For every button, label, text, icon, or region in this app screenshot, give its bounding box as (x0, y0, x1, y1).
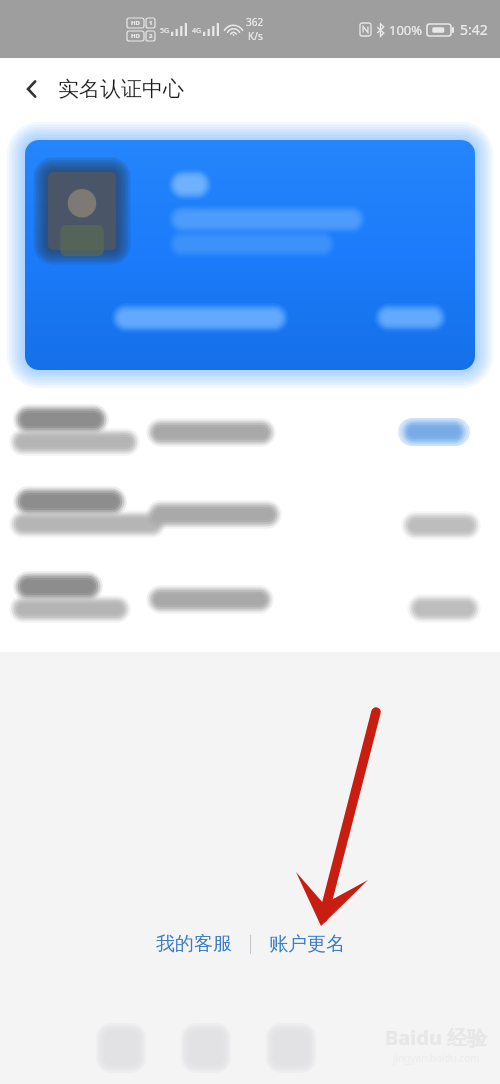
button[interactable]: 导航 2 (177, 1019, 235, 1077)
staticText: K/s (248, 29, 263, 43)
button[interactable]: 返回 (10, 67, 54, 111)
button[interactable]: 导航 1 (92, 1019, 150, 1077)
staticText: 362 (246, 15, 264, 29)
staticText: Baidu 经验 (385, 1024, 488, 1051)
staticText: 实名认证中心 (58, 76, 184, 102)
button[interactable] (0, 399, 500, 481)
button[interactable] (0, 566, 500, 646)
staticText: 5:42 (460, 20, 488, 39)
staticText: 2 (149, 32, 153, 40)
staticText: 100% (389, 21, 423, 39)
button[interactable] (0, 481, 500, 566)
staticText: 1 (149, 19, 153, 27)
staticText: 我的客服 (156, 932, 232, 956)
button[interactable]: 导航 3 (262, 1019, 320, 1077)
staticText: HD (131, 19, 140, 27)
button[interactable] (398, 418, 470, 446)
button[interactable]: 账户更名 (263, 926, 351, 962)
button[interactable] (25, 140, 475, 370)
staticText: 4G (192, 26, 202, 36)
staticText: 账户更名 (269, 932, 345, 956)
staticText: HD (131, 32, 140, 40)
staticText: 5G (160, 26, 170, 36)
button[interactable]: 我的客服 (150, 926, 238, 962)
